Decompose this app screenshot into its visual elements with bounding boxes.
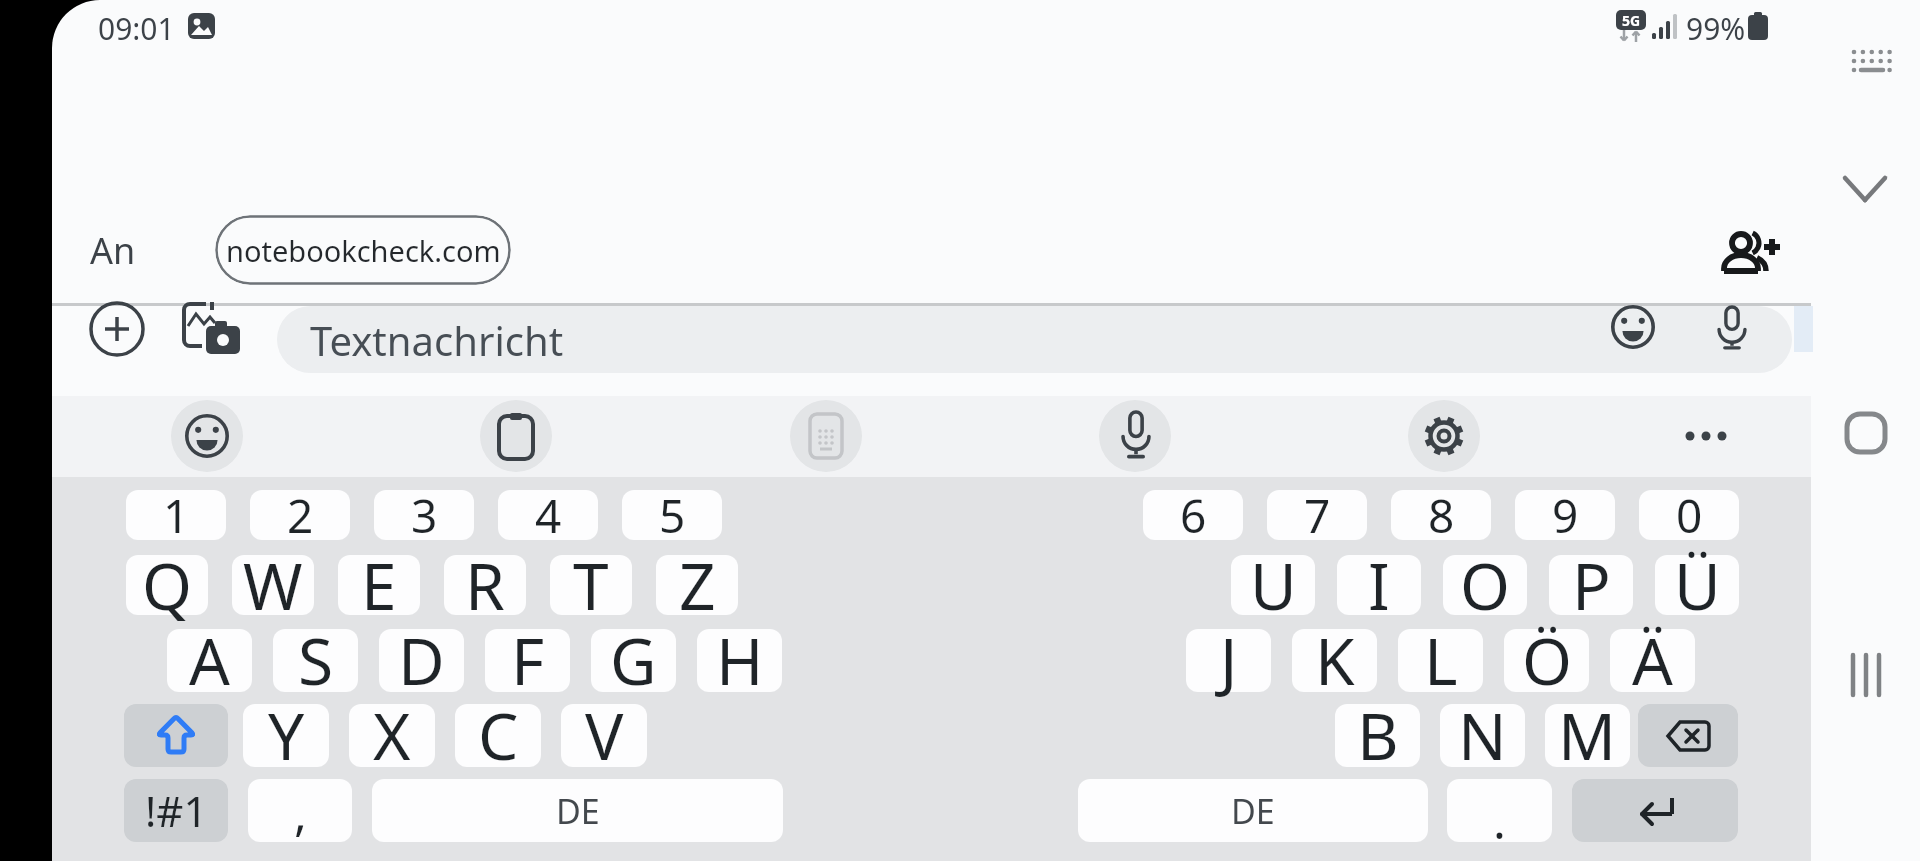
staticText: 9 (1552, 484, 1579, 547)
button[interactable] (1231, 555, 1315, 615)
button[interactable] (338, 555, 420, 615)
button[interactable] (622, 490, 722, 540)
button[interactable] (1267, 490, 1367, 540)
button[interactable] (1840, 406, 1896, 460)
staticText: L (1424, 617, 1458, 704)
staticText: J (1220, 617, 1238, 704)
staticText: I (1368, 542, 1390, 629)
staticText: Textnachricht (310, 313, 564, 367)
staticText: Z (679, 542, 716, 629)
button[interactable] (1610, 629, 1695, 692)
button[interactable] (1714, 222, 1790, 288)
button[interactable] (1099, 400, 1171, 472)
staticText: 09:01 (98, 8, 175, 49)
staticText: 2 (287, 484, 314, 547)
button[interactable] (1447, 779, 1552, 842)
staticText: DE (1231, 788, 1275, 834)
button[interactable] (1572, 779, 1738, 842)
button[interactable] (561, 704, 647, 767)
staticText: R (465, 542, 505, 629)
staticText: An (90, 226, 136, 275)
button[interactable] (248, 779, 352, 842)
staticText: W (243, 542, 303, 629)
button[interactable] (1078, 779, 1428, 842)
button[interactable] (697, 629, 782, 692)
staticText: Y (268, 692, 305, 779)
button[interactable] (374, 490, 474, 540)
button[interactable] (1549, 555, 1633, 615)
staticText: DE (556, 788, 600, 834)
staticText: Q (142, 542, 192, 629)
staticText: T (573, 542, 609, 629)
button[interactable] (232, 555, 314, 615)
button[interactable] (1704, 300, 1756, 352)
button[interactable] (1611, 305, 1655, 349)
staticText: 5 (659, 484, 686, 547)
button[interactable] (1545, 704, 1630, 767)
button[interactable] (1186, 629, 1271, 692)
staticText: M (1558, 692, 1617, 779)
button[interactable]: notebookcheck.com (215, 215, 511, 285)
button[interactable] (1515, 490, 1615, 540)
button[interactable] (126, 555, 208, 615)
staticText: 6 (1180, 484, 1207, 547)
button[interactable] (126, 490, 226, 540)
button[interactable] (1837, 165, 1897, 215)
staticText: S (298, 617, 334, 704)
button[interactable] (349, 704, 435, 767)
button[interactable] (124, 779, 228, 842)
staticText: O (1460, 542, 1510, 629)
staticText: Ö (1522, 617, 1572, 704)
staticText: . (1493, 788, 1506, 853)
staticText: B (1357, 692, 1399, 779)
button[interactable] (498, 490, 598, 540)
button[interactable] (591, 629, 676, 692)
button[interactable] (550, 555, 632, 615)
staticText: 1 (163, 484, 190, 547)
button[interactable] (480, 400, 552, 472)
staticText: 8 (1428, 484, 1455, 547)
button[interactable] (379, 629, 464, 692)
button[interactable] (1504, 629, 1589, 692)
button[interactable] (372, 779, 783, 842)
button[interactable] (1638, 704, 1738, 767)
staticText: V (585, 692, 624, 779)
button[interactable] (1398, 629, 1483, 692)
button[interactable] (1335, 704, 1420, 767)
button[interactable] (1292, 629, 1377, 692)
button[interactable] (1670, 400, 1742, 472)
button[interactable] (656, 555, 738, 615)
button[interactable] (1391, 490, 1491, 540)
button[interactable] (1639, 490, 1739, 540)
staticText: 5G (1622, 11, 1641, 30)
staticText: H (716, 617, 764, 704)
button[interactable] (124, 704, 228, 767)
staticText: U (1250, 542, 1297, 629)
button[interactable] (1655, 555, 1739, 615)
button[interactable] (182, 300, 244, 358)
button[interactable] (171, 400, 243, 472)
button[interactable] (790, 400, 862, 472)
staticText: 7 (1304, 484, 1331, 547)
button[interactable] (455, 704, 541, 767)
button[interactable] (485, 629, 570, 692)
staticText: N (1458, 692, 1507, 779)
button[interactable] (1408, 400, 1480, 472)
staticText: G (610, 617, 657, 704)
button[interactable] (1440, 704, 1525, 767)
staticText: Ä (1632, 617, 1673, 704)
staticText: K (1315, 617, 1355, 704)
button[interactable] (1842, 645, 1898, 705)
button[interactable] (1337, 555, 1421, 615)
button[interactable] (444, 555, 526, 615)
button[interactable] (250, 490, 350, 540)
button[interactable] (167, 629, 252, 692)
button[interactable] (1143, 490, 1243, 540)
button[interactable]: Textnachricht (277, 306, 1792, 373)
button[interactable] (1846, 42, 1898, 82)
button[interactable] (1443, 555, 1527, 615)
button[interactable] (243, 704, 329, 767)
button[interactable] (273, 629, 358, 692)
button[interactable] (84, 300, 150, 362)
staticText: 0 (1676, 484, 1703, 547)
